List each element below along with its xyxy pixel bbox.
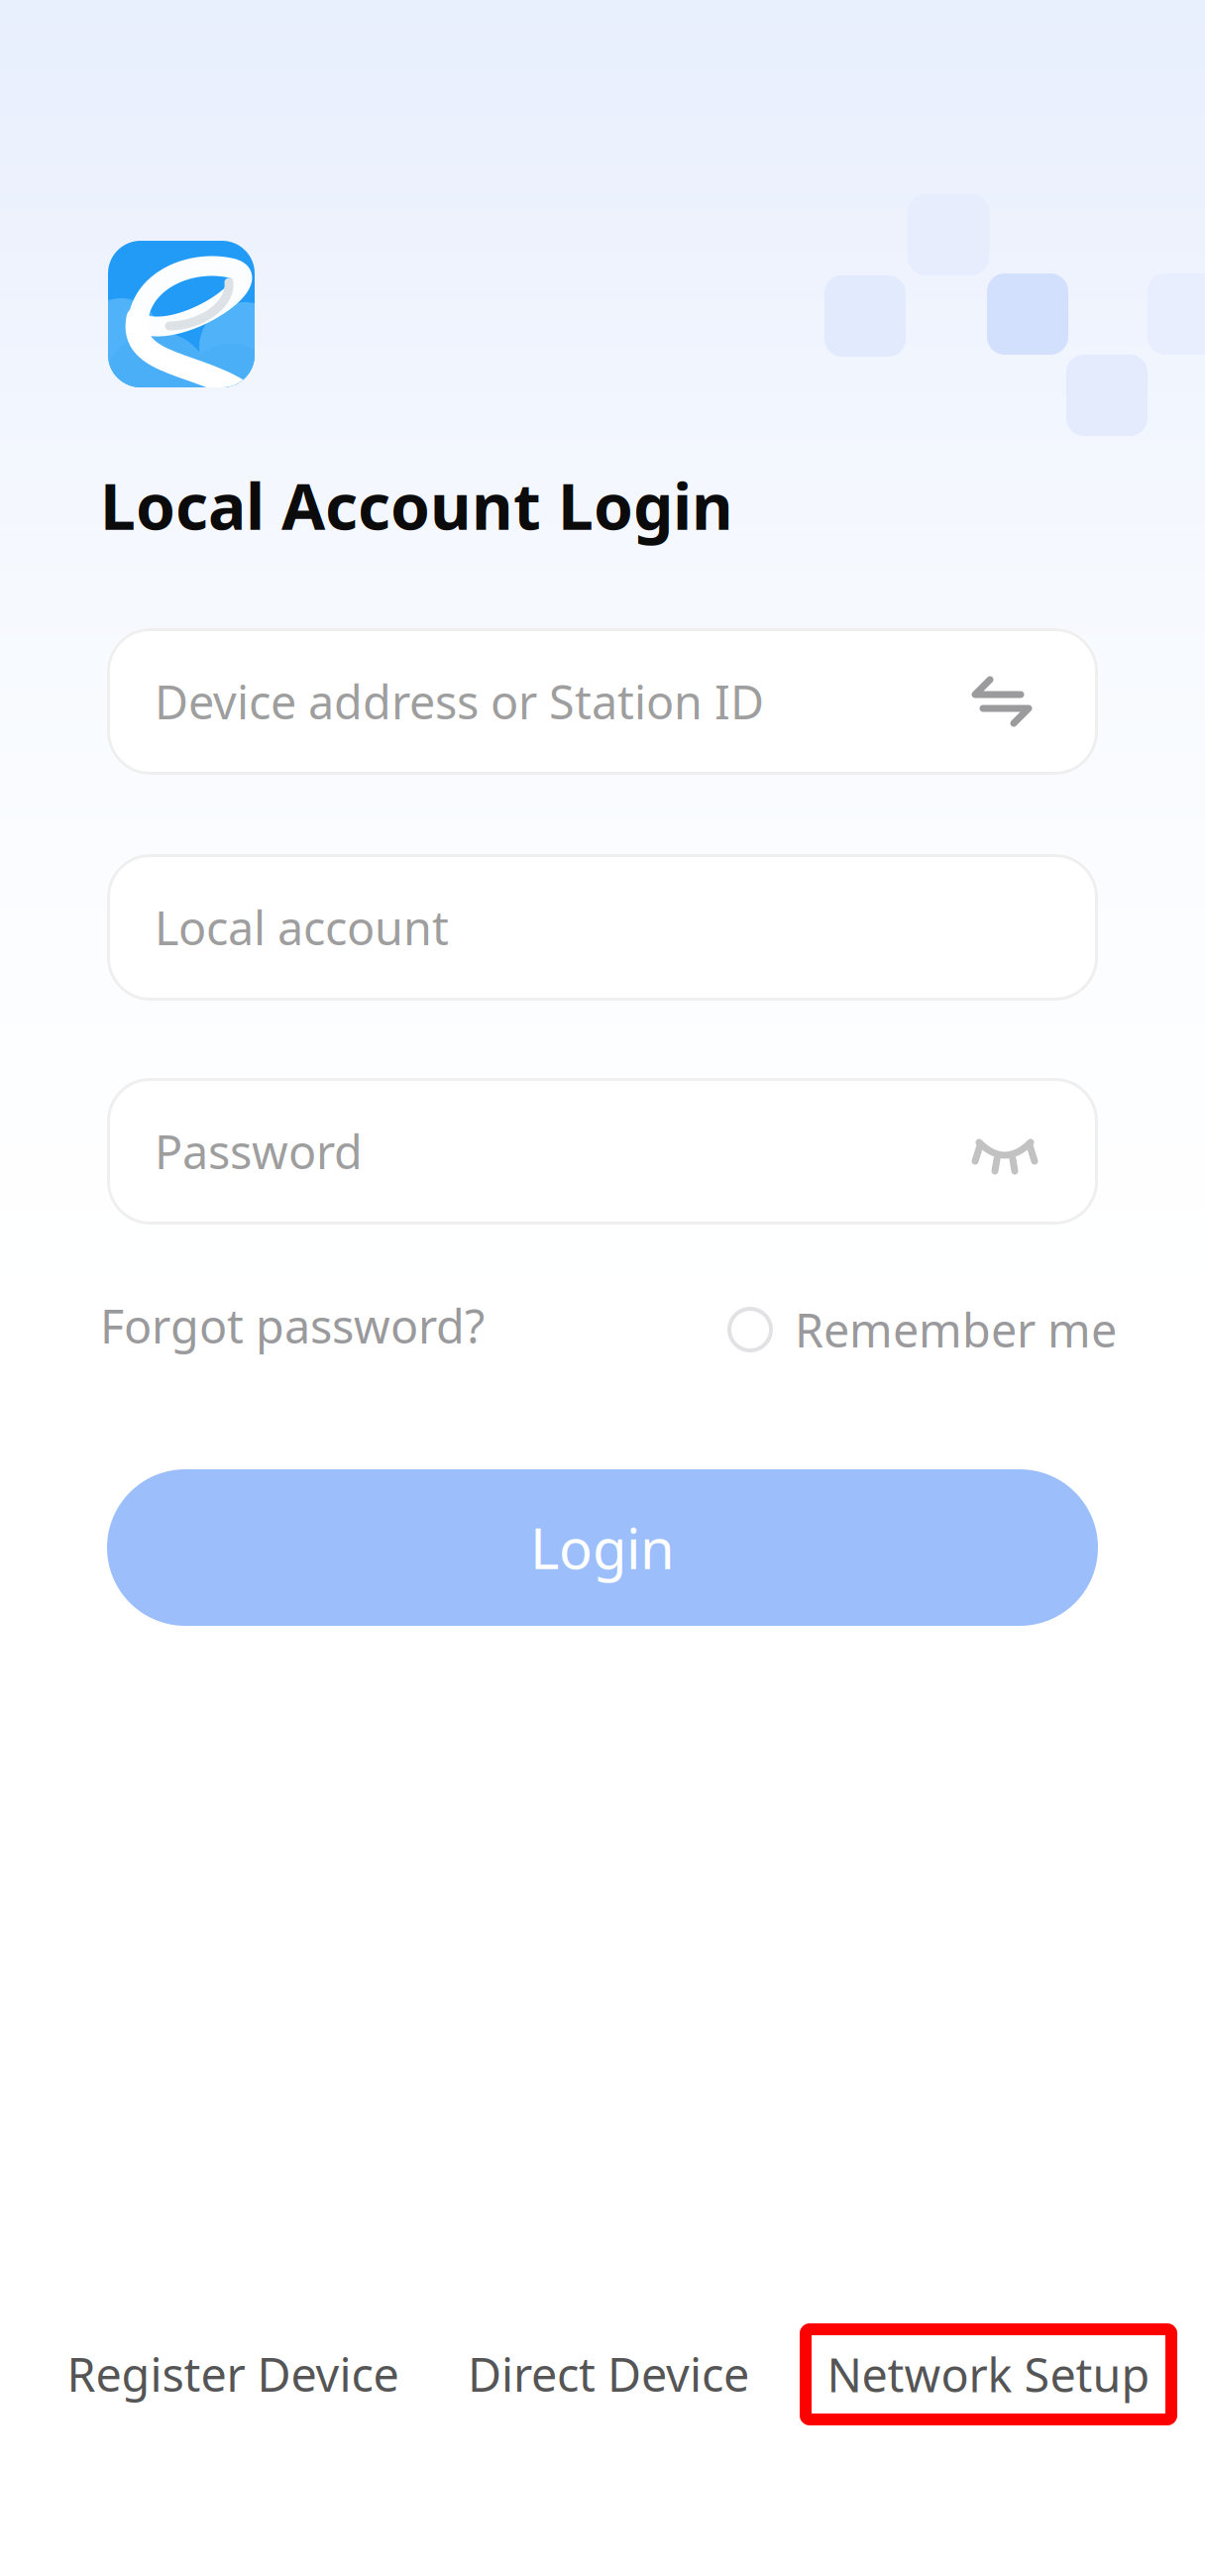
staticText: Password <box>155 1121 363 1182</box>
button[interactable]: Direct Device <box>465 2340 752 2408</box>
button[interactable]: Local account <box>107 854 1098 1001</box>
button[interactable]: Device address or Station ID <box>107 628 1098 775</box>
staticText: Register Device <box>67 2343 399 2405</box>
staticText: Login <box>530 1511 675 1584</box>
button[interactable]: Password <box>107 1078 1098 1225</box>
staticText: Device address or Station ID <box>155 671 764 732</box>
staticText: Direct Device <box>468 2343 749 2405</box>
staticText: Network Setup <box>827 2344 1150 2405</box>
button[interactable]: Switch address mode <box>970 676 1034 727</box>
button[interactable]: Show password <box>972 1135 1038 1177</box>
staticText: Local Account Login <box>100 463 733 547</box>
staticText: Remember me <box>795 1299 1117 1360</box>
staticText: Local account <box>155 897 449 958</box>
button[interactable]: Forgot password? <box>100 1295 516 1356</box>
staticText: Forgot password? <box>100 1295 485 1356</box>
button[interactable]: Login <box>107 1469 1098 1626</box>
button[interactable]: Network Setup <box>800 2323 1177 2425</box>
button[interactable]: Register Device <box>64 2340 401 2408</box>
button[interactable]: Remember me <box>727 1299 1163 1360</box>
